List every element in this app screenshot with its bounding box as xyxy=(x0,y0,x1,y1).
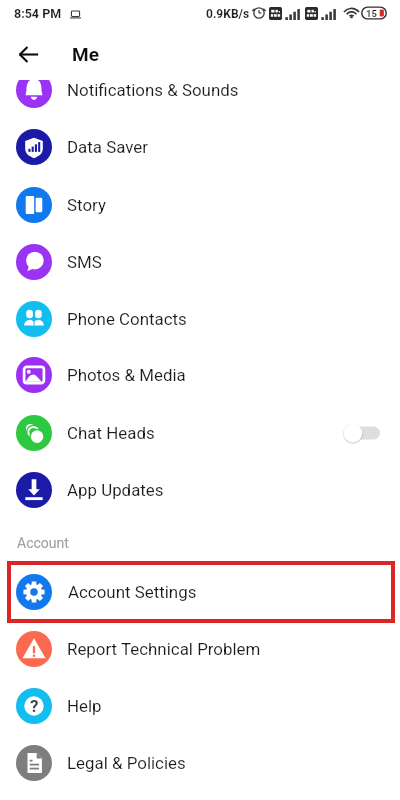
staticText: Photos & Media xyxy=(67,365,186,385)
button[interactable]: SMS xyxy=(0,234,400,290)
button[interactable]: Data Saver xyxy=(0,119,400,175)
staticText: 0.9KB/s xyxy=(206,7,250,21)
staticText: Report Technical Problem xyxy=(67,639,261,659)
staticText: Account Settings xyxy=(68,582,197,602)
staticText: Chat Heads xyxy=(67,423,155,443)
staticText: Phone Contacts xyxy=(67,309,187,329)
staticText: Account xyxy=(17,535,69,551)
button[interactable]: ? xyxy=(0,678,400,734)
button[interactable]: Chat Heads xyxy=(0,405,400,461)
staticText: ? xyxy=(30,696,39,716)
staticText: 15 xyxy=(366,8,377,19)
staticText: Data Saver xyxy=(67,137,149,157)
staticText: Me xyxy=(72,43,99,65)
staticText: SMS xyxy=(67,252,102,272)
staticText: Help xyxy=(67,696,102,716)
button[interactable]: Notifications & Sounds xyxy=(0,80,400,118)
button[interactable]: Back xyxy=(5,31,51,77)
button[interactable]: Toggle Chat Heads xyxy=(340,415,388,451)
staticText: Story xyxy=(67,195,106,215)
button[interactable]: Story xyxy=(0,177,400,233)
button[interactable]: Phone Contacts xyxy=(0,291,400,347)
button[interactable]: Photos & Media xyxy=(0,347,400,403)
staticText: 8:54 PM xyxy=(14,6,62,21)
button[interactable]: Legal & Policies xyxy=(0,735,400,791)
button[interactable]: App Updates xyxy=(0,462,400,518)
staticText: Legal & Policies xyxy=(67,753,186,773)
button[interactable]: Report Technical Problem xyxy=(0,621,400,677)
button[interactable]: Account Settings xyxy=(7,561,395,623)
staticText: Notifications & Sounds xyxy=(67,80,239,100)
staticText: App Updates xyxy=(67,480,164,500)
